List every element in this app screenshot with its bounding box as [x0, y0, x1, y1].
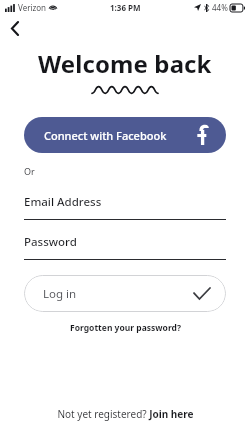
- staticText: Welcome back: [38, 47, 212, 80]
- button[interactable]: Log in: [24, 275, 226, 312]
- staticText: Or: [24, 165, 35, 177]
- button[interactable]: Not yet registered? Join here: [51, 404, 200, 424]
- staticText: 1:36 PM: [110, 2, 141, 13]
- button[interactable]: Back: [2, 17, 28, 39]
- button[interactable]: Password: [24, 226, 226, 263]
- staticText: Password: [24, 234, 77, 250]
- button[interactable]: Forgotten your password?: [64, 320, 187, 336]
- staticText: 44%: [212, 2, 228, 13]
- staticText: Email Address: [24, 194, 102, 210]
- staticText: Not yet registered? Join here: [57, 407, 194, 421]
- staticText: Log in: [43, 286, 77, 302]
- button[interactable]: Email Address: [24, 186, 226, 223]
- staticText: Verizon: [18, 2, 47, 13]
- button[interactable]: Connect with Facebook: [24, 117, 226, 153]
- staticText: Forgotten your password?: [70, 322, 181, 334]
- staticText: Connect with Facebook: [44, 128, 167, 143]
